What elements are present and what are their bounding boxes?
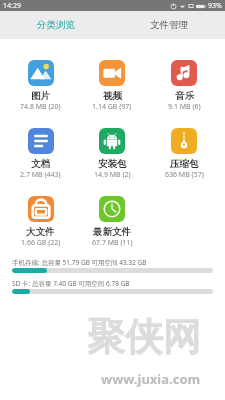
button[interactable]: 安装包 [76,124,148,192]
staticText: 67.7 MB (11) [92,238,133,248]
button[interactable]: 图片 [5,56,76,124]
staticText: SD 卡: 总容量 7.40 GB 可用空间 6.78 GB [12,279,130,288]
button[interactable]: 大文件 [5,192,76,260]
staticText: 2.7 MB (443) [20,170,61,180]
button[interactable]: 文件管理 [112,11,225,39]
staticText: 最新文件 [93,226,131,238]
button[interactable]: 最新文件 [76,192,148,260]
staticText: 14:29 [3,1,21,11]
staticText: 压缩包 [170,158,199,170]
button[interactable]: 文档 [5,124,76,192]
button[interactable]: 视频 [76,56,148,124]
staticText: 聚侠网 [87,313,201,361]
staticText: www.juxia.com [101,370,201,388]
staticText: 文件管理 [150,19,188,31]
staticText: 636 MB (57) [165,170,204,180]
staticText: 图片 [31,90,50,102]
button[interactable]: 分类浏览 [0,11,112,39]
staticText: 9.1 MB (6) [168,102,201,112]
staticText: 安装包 [98,158,127,170]
staticText: 视频 [103,90,122,102]
staticText: 大文件 [26,226,55,238]
button[interactable]: 音乐 [148,56,220,124]
staticText: 1.14 GB (97) [92,102,132,112]
staticText: 文档 [31,158,50,170]
staticText: 93% [208,1,222,11]
staticText: 音乐 [175,90,194,102]
staticText: 1.66 GB (22) [21,238,61,248]
staticText: 手机存储: 总容量 51.79 GB 可用空间 43.32 GB [12,258,147,267]
staticText: 74.8 MB (20) [20,102,61,112]
button[interactable]: 压缩包 [148,124,220,192]
staticText: 分类浏览 [37,19,75,31]
staticText: 14.9 MB (2) [94,170,131,180]
